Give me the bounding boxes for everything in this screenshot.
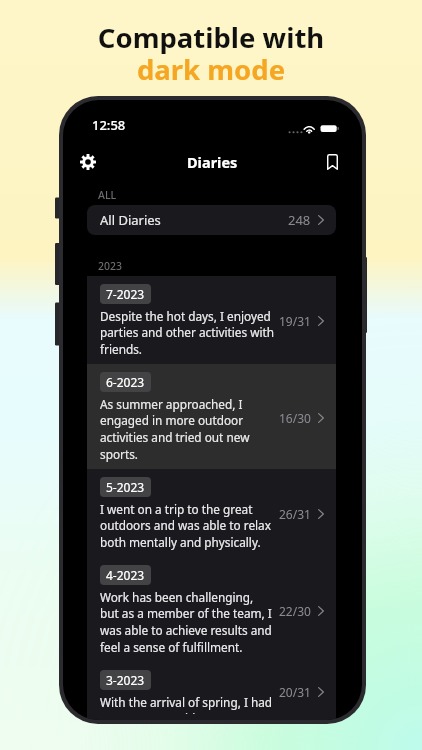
button[interactable]: 6-2023	[87, 364, 336, 469]
staticText: Work has been challenging, but as a memb…	[100, 589, 279, 656]
staticText: 2023	[98, 259, 123, 273]
staticText: 7-2023	[106, 286, 145, 302]
button[interactable]: 3-2023	[87, 662, 336, 720]
button[interactable]: Settings	[72, 146, 104, 178]
staticText: 4-2023	[106, 567, 145, 583]
button[interactable]: 5-2023	[87, 469, 336, 557]
staticText: 12:58	[92, 116, 126, 134]
staticText: With the arrival of spring, I had more o…	[100, 694, 279, 714]
button[interactable]: Bookmarks	[316, 146, 348, 178]
staticText: 20/31	[279, 684, 311, 700]
staticText: 3-2023	[106, 672, 145, 688]
staticText: 16/30	[279, 410, 311, 426]
button[interactable]: 7-2023	[87, 276, 336, 364]
button[interactable]: All Diaries	[87, 205, 336, 235]
staticText: 22/30	[279, 603, 311, 619]
staticText: 19/31	[279, 313, 311, 329]
button[interactable]: 4-2023	[87, 557, 336, 662]
staticText: I went on a trip to the great outdoors a…	[100, 501, 279, 551]
staticText: As summer approached, I engaged in more …	[100, 396, 279, 463]
staticText: 5-2023	[106, 479, 145, 495]
staticText: Diaries	[187, 152, 238, 172]
staticText: 248	[288, 211, 311, 229]
staticText: Compatible with dark mode	[0, 19, 422, 88]
staticText: 26/31	[279, 506, 311, 522]
staticText: 6-2023	[106, 374, 145, 390]
staticText: Despite the hot days, I enjoyed parties …	[100, 308, 279, 358]
staticText: All Diaries	[100, 211, 161, 229]
staticText: ALL	[98, 188, 117, 202]
